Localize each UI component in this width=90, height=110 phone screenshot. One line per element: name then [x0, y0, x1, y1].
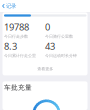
- staticText: 今日运动时长分钟: [45, 53, 77, 58]
- button[interactable]: 查看更多: [4, 65, 86, 72]
- staticText: 8.3: [4, 40, 17, 52]
- staticText: 记录: [6, 3, 16, 9]
- staticText: 19788: [4, 21, 29, 33]
- staticText: 0: [45, 21, 50, 33]
- staticText: 43: [45, 40, 55, 52]
- button[interactable]: 记录: [0, 0, 21, 12]
- staticText: 查看更多: [37, 66, 53, 71]
- staticText: 今日骑行公里数: [45, 34, 73, 39]
- staticText: 车批充量: [4, 83, 32, 92]
- staticText: 今日累计行走公里: [4, 53, 36, 58]
- staticText: 今日行走步数: [4, 34, 28, 39]
